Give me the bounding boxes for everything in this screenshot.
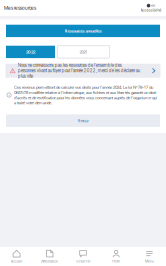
- button[interactable]: Attestation: [33, 247, 66, 266]
- staticText: Nous ne connaissons pas les ressources d…: [18, 62, 140, 79]
- button[interactable]: Accessibilité: [140, 1, 162, 14]
- staticText: 2022: [26, 49, 35, 54]
- button[interactable]: 2022: [6, 46, 55, 58]
- staticText: Ressources annuelles: [64, 28, 101, 33]
- button[interactable]: Nous ne connaissons pas les ressources d…: [5, 64, 160, 78]
- staticText: Profil: [112, 259, 120, 263]
- staticText: Mes ressources: [4, 5, 36, 11]
- button[interactable]: 2021: [57, 46, 109, 58]
- staticText: Retour: [77, 118, 88, 123]
- staticText: Accueil: [11, 259, 23, 263]
- staticText: Menu: [145, 259, 154, 263]
- button[interactable]: Retour: [6, 114, 160, 127]
- staticText: Attestation: [41, 259, 58, 263]
- staticText: 2021: [79, 49, 87, 54]
- button[interactable]: Profil: [100, 247, 133, 266]
- staticText: Tchat-Tel: [75, 259, 90, 263]
- button[interactable]: Tchat-Tel: [66, 247, 100, 266]
- staticText: Ces revenus permettront de calculer vos …: [14, 85, 157, 105]
- button[interactable]: Accueil: [0, 247, 33, 266]
- staticText: Accessibilité: [140, 8, 161, 12]
- button[interactable]: Menu: [133, 247, 166, 266]
